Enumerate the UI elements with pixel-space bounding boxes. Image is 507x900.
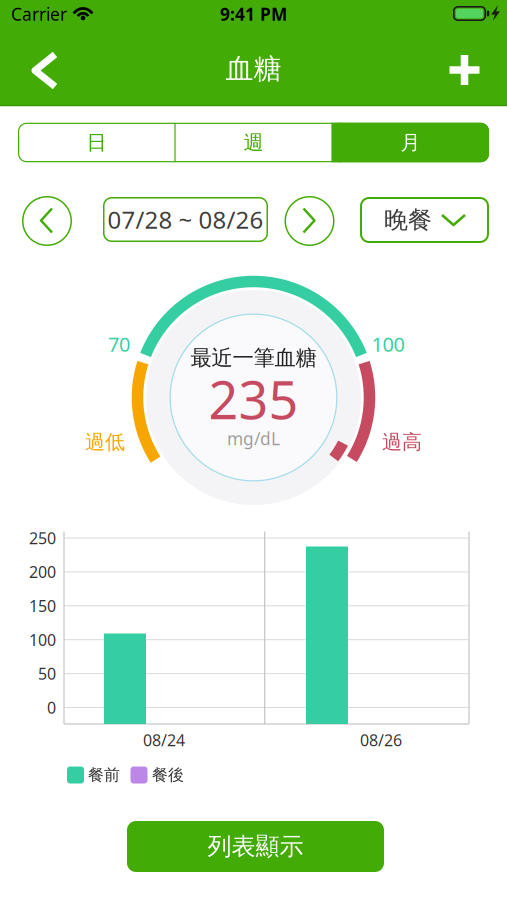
staticText: Carrier [11, 2, 67, 25]
button[interactable]: Back [22, 48, 66, 92]
staticText: 過高 [382, 430, 422, 454]
staticText: 血糖 [225, 52, 281, 86]
staticText: 07/28 ~ 08/26 [107, 204, 263, 235]
staticText: 08/26 [360, 729, 402, 751]
staticText: 250 [29, 527, 56, 549]
button[interactable]: 晚餐 [360, 197, 489, 243]
button[interactable]: Previous period [22, 196, 72, 246]
staticText: 列表顯示 [207, 832, 303, 861]
staticText: 9:41 PM [220, 2, 287, 25]
button[interactable]: 列表顯示 [127, 821, 384, 872]
staticText: 過低 [85, 430, 125, 454]
staticText: 150 [29, 595, 56, 616]
button[interactable]: Next period [284, 196, 334, 246]
staticText: 最近一筆血糖 [190, 345, 316, 371]
staticText: 0 [47, 697, 56, 718]
staticText: 235 [208, 364, 298, 434]
staticText: 100 [371, 331, 404, 357]
staticText: 晚餐 [384, 205, 432, 235]
button[interactable]: 週 [175, 123, 332, 162]
button[interactable]: 07/28 ~ 08/26 [103, 197, 268, 242]
staticText: 08/24 [143, 729, 185, 751]
staticText: 餐後 [152, 765, 184, 785]
staticText: 50 [38, 663, 56, 684]
staticText: mg/dL [227, 427, 280, 450]
button[interactable]: 月 [332, 123, 489, 162]
staticText: 月 [400, 130, 420, 155]
staticText: 200 [29, 561, 56, 582]
staticText: 餐前 [88, 765, 120, 785]
staticText: 日 [86, 130, 106, 155]
button[interactable]: 日 [18, 123, 175, 162]
button[interactable]: Add [442, 48, 486, 92]
staticText: 70 [108, 331, 130, 357]
staticText: 週 [243, 130, 263, 155]
staticText: 100 [29, 629, 56, 650]
